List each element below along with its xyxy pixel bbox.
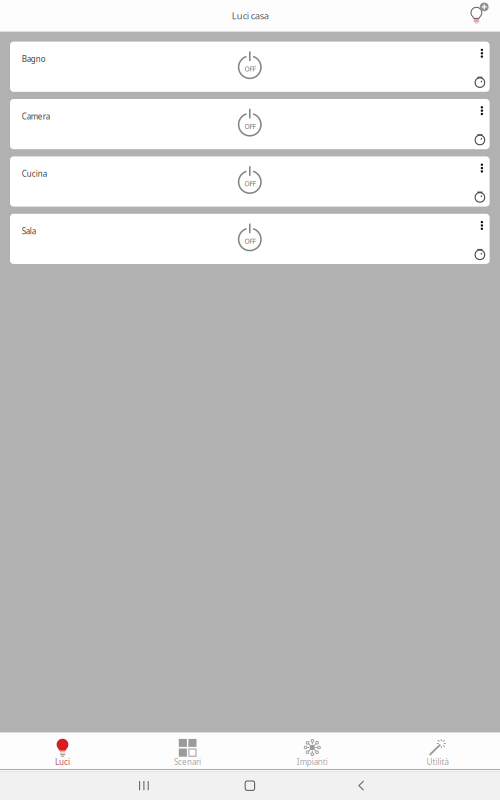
button[interactable]: Cucina — [10, 156, 490, 207]
staticText: Sala — [22, 226, 36, 236]
staticText: OFF — [244, 179, 255, 188]
staticText: Luci — [55, 756, 70, 767]
button[interactable]: Scenari — [125, 731, 250, 771]
button[interactable]: Aggiungi luce — [0, 0, 500, 800]
button[interactable]: Luci — [0, 731, 125, 771]
button[interactable]: Camera — [10, 99, 490, 149]
staticText: OFF — [244, 64, 255, 73]
staticText: Scenari — [174, 756, 201, 767]
staticText: Camera — [22, 111, 50, 122]
button[interactable]: Recenti — [0, 773, 166, 800]
staticText: OFF — [244, 237, 255, 246]
button[interactable]: Home — [166, 773, 332, 800]
button[interactable]: Sala — [10, 214, 490, 264]
button[interactable]: Indietro — [332, 773, 500, 800]
staticText: OFF — [244, 122, 255, 131]
staticText: Luci casa — [232, 9, 269, 22]
staticText: Impianti — [297, 756, 328, 767]
button[interactable]: Utilità — [375, 731, 500, 771]
button[interactable]: Impianti — [250, 731, 375, 771]
button[interactable]: Bagno — [10, 42, 490, 92]
staticText: Bagno — [22, 54, 46, 64]
staticText: Utilità — [427, 756, 449, 767]
staticText: Cucina — [22, 168, 47, 179]
